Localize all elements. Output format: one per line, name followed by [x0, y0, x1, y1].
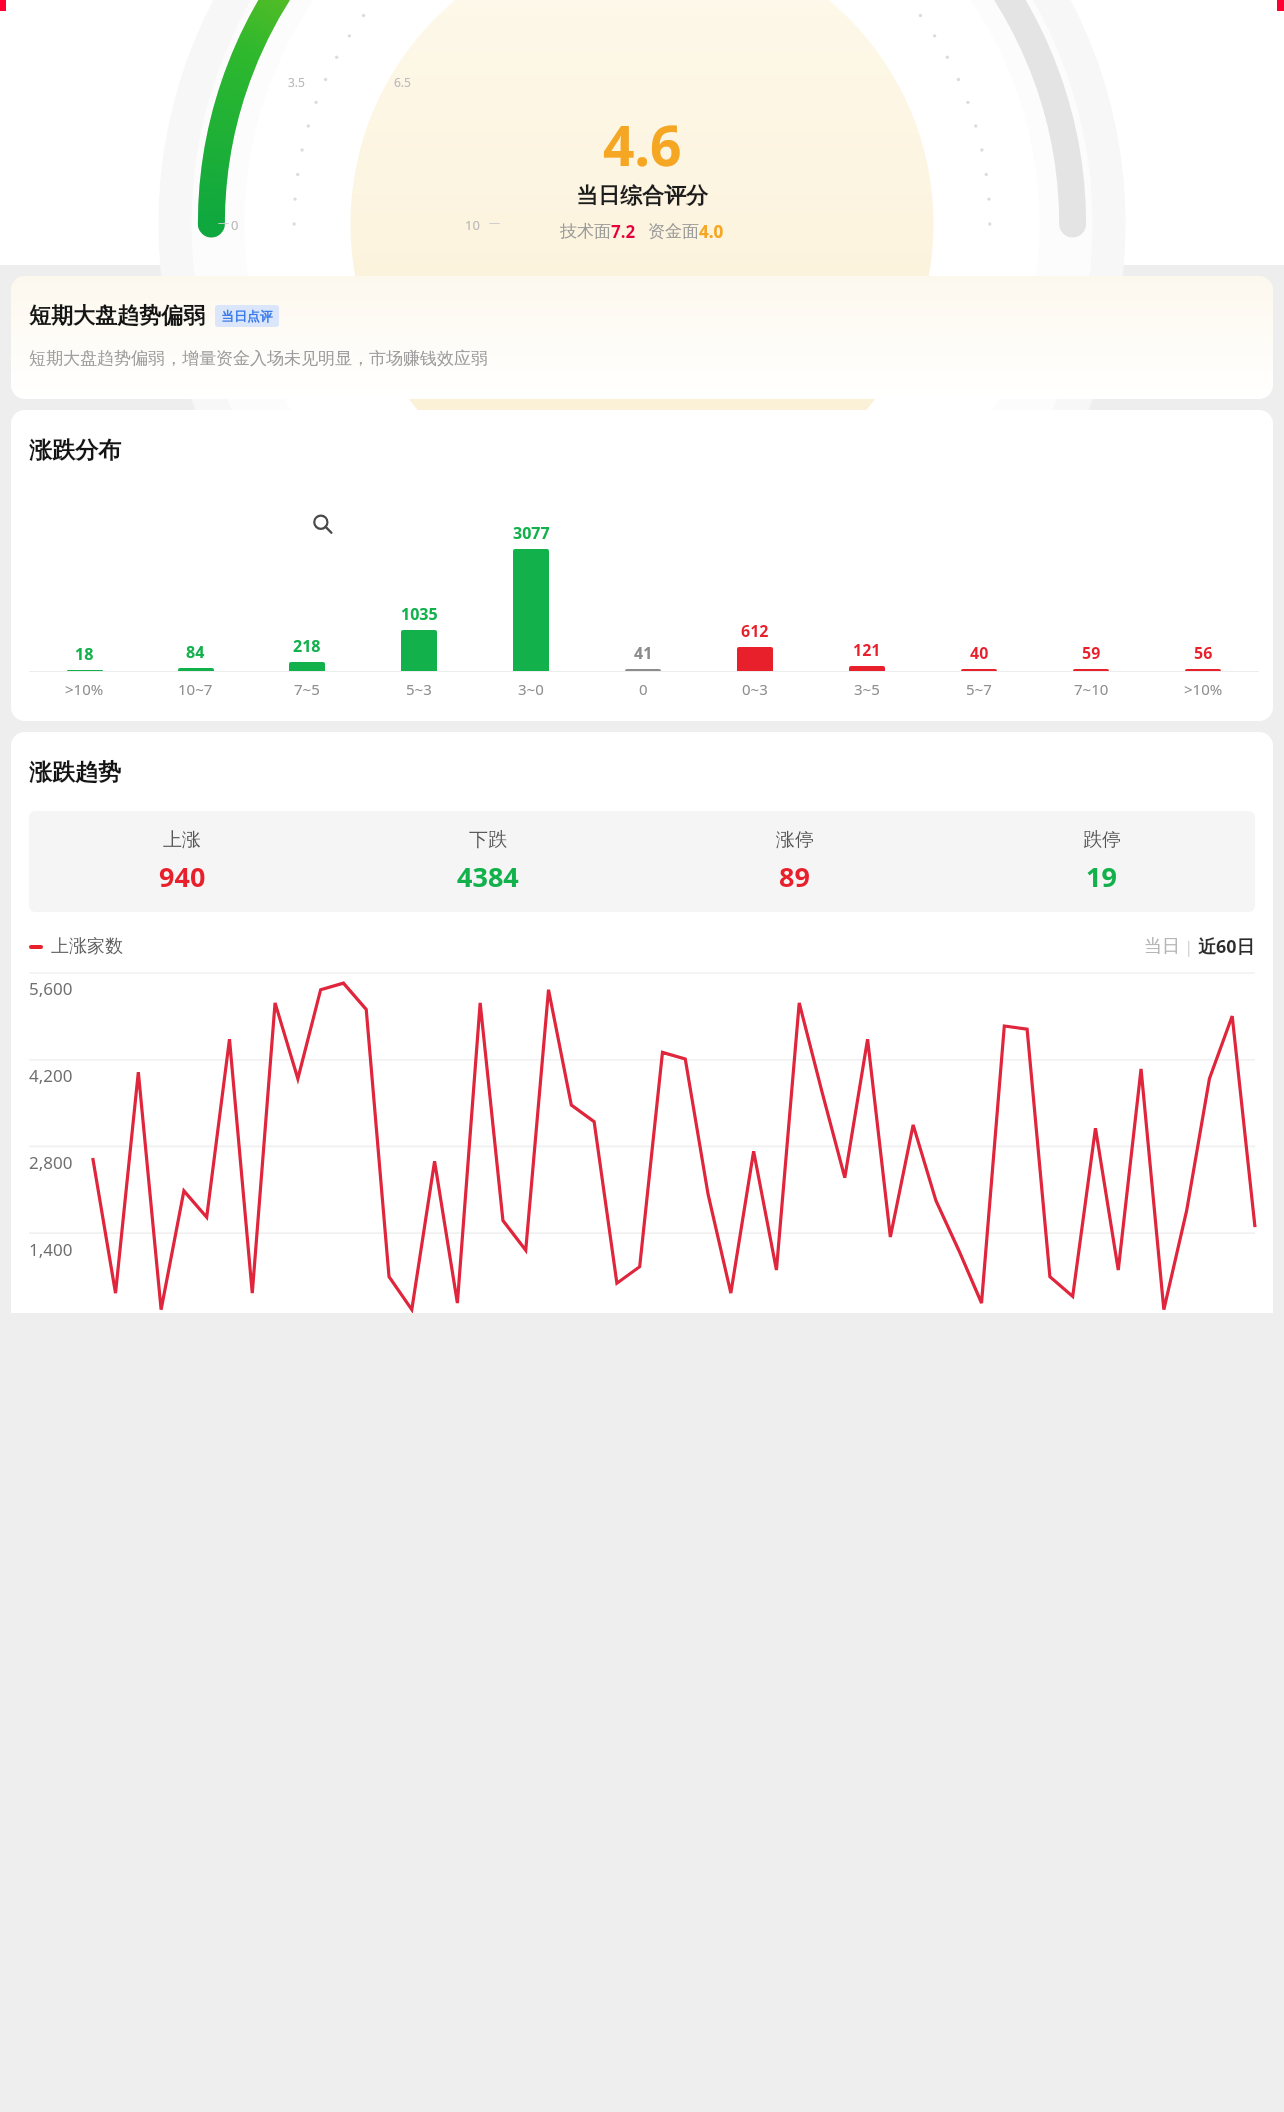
- staticText: 0~3: [742, 679, 768, 699]
- staticText: 3~0: [518, 679, 544, 699]
- staticText: 涨跌趋势: [29, 758, 121, 787]
- staticText: 4.0: [699, 220, 724, 243]
- staticText: 7~10: [1074, 679, 1109, 699]
- staticText: 短期大盘趋势偏弱，增量资金入场未见明显，市场赚钱效应弱: [29, 348, 488, 369]
- button[interactable]: 涨跌分布: [11, 410, 1273, 721]
- staticText: 涨跌分布: [29, 436, 121, 465]
- staticText: 84: [186, 641, 205, 663]
- staticText: 4.6: [603, 107, 682, 182]
- staticText: 6.5: [394, 74, 411, 90]
- staticText: 5,600: [29, 977, 73, 1000]
- staticText: >10%: [1184, 679, 1223, 699]
- staticText: 4384: [457, 858, 519, 895]
- staticText: 当日点评: [221, 308, 273, 324]
- staticText: 940: [159, 858, 206, 895]
- staticText: 0: [231, 216, 239, 234]
- staticText: 当日: [1144, 935, 1180, 958]
- staticText: 1,400: [29, 1238, 73, 1261]
- staticText: 下跌: [469, 828, 507, 852]
- staticText: 121: [853, 639, 881, 661]
- button[interactable]: Search: [306, 508, 339, 541]
- button[interactable]: 0: [0, 0, 1284, 265]
- staticText: 近60日: [1198, 934, 1255, 959]
- button[interactable]: 短期大盘趋势偏弱: [11, 276, 1273, 399]
- staticText: |: [1180, 936, 1198, 958]
- staticText: 当日综合评分: [576, 182, 708, 210]
- staticText: 18: [75, 643, 94, 665]
- staticText: 40: [970, 642, 989, 664]
- staticText: 89: [779, 858, 810, 895]
- staticText: 10: [465, 216, 480, 234]
- staticText: 612: [741, 620, 769, 642]
- button[interactable]: 当日: [1144, 935, 1180, 958]
- staticText: 218: [293, 635, 321, 657]
- staticText: 3.5: [288, 74, 305, 90]
- staticText: 1035: [401, 603, 438, 625]
- button[interactable]: 近60日: [1198, 934, 1255, 959]
- staticText: 2,800: [29, 1151, 73, 1174]
- staticText: 上涨家数: [51, 935, 123, 958]
- staticText: >10%: [65, 679, 104, 699]
- staticText: 56: [1194, 642, 1213, 664]
- staticText: 涨停: [776, 828, 814, 852]
- staticText: 7.2: [611, 220, 636, 243]
- staticText: 10~7: [178, 679, 213, 699]
- staticText: 5~3: [406, 679, 432, 699]
- staticText: 19: [1086, 858, 1117, 895]
- staticText: 资金面: [648, 221, 699, 242]
- staticText: 跌停: [1083, 828, 1121, 852]
- staticText: 0: [639, 679, 648, 699]
- staticText: —: [489, 214, 500, 229]
- staticText: 59: [1082, 642, 1101, 664]
- staticText: 3077: [513, 522, 550, 544]
- staticText: —: [218, 214, 229, 229]
- staticText: 7~5: [294, 679, 320, 699]
- staticText: 短期大盘趋势偏弱: [29, 302, 205, 330]
- staticText: 上涨: [163, 828, 201, 852]
- staticText: 5~7: [966, 679, 992, 699]
- staticText: 技术面: [560, 221, 611, 242]
- staticText: 3~5: [854, 679, 880, 699]
- staticText: 41: [634, 642, 653, 664]
- staticText: 4,200: [29, 1064, 73, 1087]
